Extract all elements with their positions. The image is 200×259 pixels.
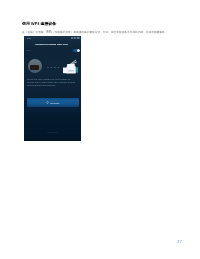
staticText: Connect to Device with WPS — [35, 42, 68, 45]
staticText: Skip setup — [47, 131, 58, 134]
staticText: WPS — [26, 49, 31, 52]
staticText: 使用 WPS 连接设备 — [22, 21, 57, 26]
staticText: 27 — [177, 239, 182, 245]
button[interactable]: Connect — [27, 98, 79, 107]
staticText: 9:41 — [27, 37, 32, 40]
staticText: Press the WPS button on your router or a… — [27, 77, 78, 86]
button[interactable]: WPS toggle — [73, 49, 80, 52]
staticText: 在《在域》中查看。WPS（无线保护设置）是连接设备的最快方式，不过，有些无线设备… — [22, 30, 172, 34]
button[interactable]: Skip setup — [24, 130, 81, 134]
staticText: Connect — [50, 101, 60, 104]
